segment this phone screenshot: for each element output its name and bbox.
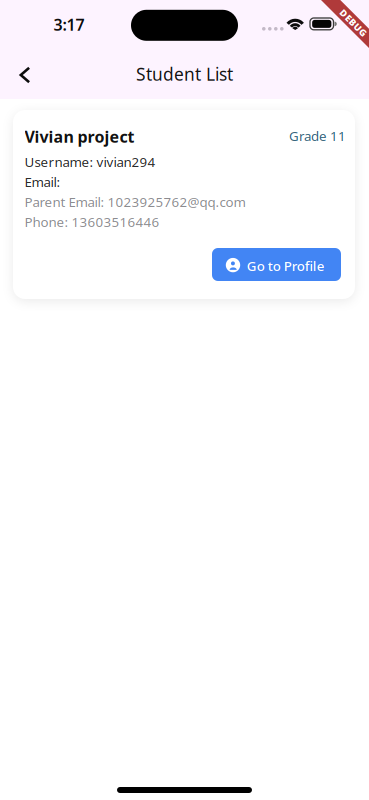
- button[interactable]: Back: [3, 53, 47, 97]
- staticText: Parent Email: 1023925762@qq.com: [24, 193, 245, 211]
- staticText: Username: vivian294: [24, 153, 155, 171]
- staticText: 3:17: [53, 14, 84, 35]
- staticText: Vivian project: [24, 126, 134, 147]
- staticText: Phone: 13603516446: [24, 213, 159, 231]
- staticText: DEBUG: [338, 14, 369, 26]
- staticText: Email:: [24, 173, 60, 191]
- staticText: Go to Profile: [247, 257, 325, 275]
- staticText: Student List: [136, 62, 233, 85]
- button[interactable]: Go to Profile: [212, 248, 341, 281]
- staticText: Grade 11: [289, 127, 346, 145]
